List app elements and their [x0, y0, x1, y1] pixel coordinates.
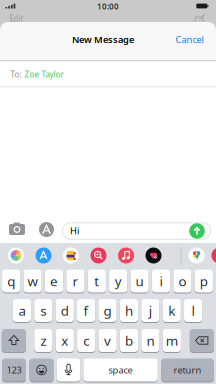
staticText: To: [10, 69, 21, 80]
button[interactable]: Cancel [169, 29, 209, 49]
staticText: y [115, 272, 122, 290]
button[interactable]: t [88, 269, 106, 293]
button[interactable]: h [120, 299, 138, 323]
staticText: p [200, 272, 208, 290]
button[interactable]: d [56, 299, 74, 323]
button[interactable]: Dictation [56, 358, 80, 382]
button[interactable]: Digital Touch [145, 247, 161, 263]
button[interactable]: c [77, 329, 95, 353]
staticText: q [7, 272, 15, 290]
button[interactable]: z [34, 329, 52, 353]
staticText: z [40, 332, 46, 349]
button[interactable]: i [152, 269, 170, 293]
button[interactable]: App Store [35, 247, 51, 263]
staticText: v [104, 332, 111, 349]
button[interactable]: iMessage apps [39, 222, 54, 237]
staticText: 123 [6, 364, 21, 376]
staticText: l [192, 302, 195, 319]
button[interactable]: To: [0, 62, 216, 87]
button[interactable]: x [56, 329, 74, 353]
button[interactable]: Search images [90, 247, 106, 263]
button[interactable]: r [66, 269, 84, 293]
staticText: k [168, 302, 175, 319]
button[interactable]: f [77, 299, 95, 323]
button[interactable]: g [98, 299, 117, 323]
staticText: return [174, 364, 202, 376]
staticText: Cancel [175, 33, 203, 46]
button[interactable]: l [184, 299, 202, 323]
button[interactable]: u [130, 269, 149, 293]
staticText: u [136, 272, 144, 290]
staticText: s [40, 302, 46, 319]
staticText: New Message [72, 33, 134, 46]
button[interactable]: q [2, 269, 20, 293]
button[interactable]: Stickers [63, 247, 79, 263]
staticText: c [83, 332, 89, 349]
staticText: g [103, 302, 111, 319]
staticText: h [125, 302, 133, 319]
staticText: w [28, 272, 38, 290]
staticText: r [72, 272, 78, 290]
staticText: o [178, 272, 186, 290]
staticText: e [50, 272, 58, 290]
button[interactable]: k [163, 299, 181, 323]
button[interactable]: Maps [188, 247, 204, 263]
button[interactable]: w [23, 269, 42, 293]
button[interactable]: n [141, 329, 159, 353]
button[interactable]: Emoji [29, 358, 53, 382]
button[interactable]: a [13, 299, 31, 323]
button[interactable]: o [173, 269, 191, 293]
staticText: space [108, 364, 132, 376]
staticText: x [61, 332, 68, 349]
staticText: f [84, 302, 89, 319]
staticText: Edit [9, 13, 23, 24]
button[interactable]: Photos [8, 247, 24, 263]
button[interactable]: e [45, 269, 63, 293]
button[interactable]: return [161, 358, 214, 382]
button[interactable]: Send [189, 223, 205, 239]
button[interactable]: b [120, 329, 138, 353]
button[interactable]: More apps [211, 247, 216, 263]
staticText: t [94, 272, 99, 290]
staticText: j [149, 302, 152, 319]
button[interactable]: v [98, 329, 117, 353]
button[interactable]: Camera [8, 222, 25, 236]
staticText: n [146, 332, 154, 349]
staticText: 10:00 [97, 1, 119, 12]
staticText: b [125, 332, 133, 349]
button[interactable]: p [195, 269, 213, 293]
staticText: Zoe Taylor [24, 69, 63, 80]
button[interactable]: 123 [2, 358, 26, 382]
staticText: i [159, 272, 162, 290]
staticText: Hi [70, 224, 79, 237]
staticText: d [61, 302, 69, 319]
button[interactable]: m [163, 329, 181, 353]
staticText: a [18, 302, 25, 319]
button[interactable]: s [34, 299, 52, 323]
button[interactable]: Delete [190, 329, 214, 353]
button[interactable]: space [83, 358, 158, 382]
staticText: m [166, 332, 178, 349]
button[interactable]: y [109, 269, 127, 293]
button[interactable]: Music [118, 247, 134, 263]
button[interactable]: j [141, 299, 159, 323]
button[interactable]: Shift [2, 329, 26, 353]
